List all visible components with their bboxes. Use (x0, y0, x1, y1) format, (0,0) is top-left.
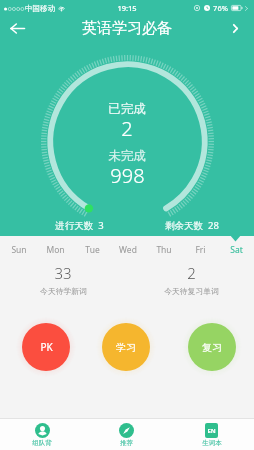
staticText: 学习 (116, 341, 136, 354)
staticText: Thu (156, 244, 172, 256)
button[interactable]: Sun (0, 241, 37, 259)
staticText: 998 (110, 162, 145, 189)
staticText: Mon (46, 244, 65, 256)
staticText: Tue (85, 244, 100, 256)
button[interactable]: Thu (146, 241, 182, 259)
staticText: 2 (187, 263, 196, 283)
button[interactable]: Tue (74, 241, 110, 259)
staticText: PK (40, 340, 53, 354)
button[interactable]: 复习 (188, 323, 236, 371)
button[interactable]: PK (22, 323, 70, 371)
staticText: 进行天数 3 (55, 219, 104, 232)
button[interactable]: EN (169, 419, 254, 450)
button[interactable]: 组队背 (0, 419, 84, 450)
staticText: Sun (11, 244, 27, 256)
staticText: 剩余天数 28 (165, 219, 219, 232)
staticText: 33 (54, 263, 72, 283)
button[interactable]: More (224, 17, 246, 39)
staticText: Wed (119, 244, 137, 256)
button[interactable]: 学习 (102, 323, 150, 371)
staticText: 中国移动 (25, 4, 55, 13)
staticText: 76% (213, 3, 228, 13)
staticText: Sat (230, 244, 243, 256)
staticText: 19:15 (117, 3, 137, 13)
staticText: 英语学习必备 (82, 19, 172, 38)
staticText: Fri (195, 244, 206, 256)
staticText: 未完成 (108, 148, 146, 164)
staticText: 生词本 (202, 439, 222, 447)
button[interactable]: Fri (182, 241, 218, 259)
button[interactable]: Back (4, 16, 30, 40)
button[interactable]: 推荐 (84, 419, 169, 450)
button[interactable]: Mon (37, 241, 74, 259)
staticText: EN (207, 427, 216, 435)
staticText: 今天待复习单词 (164, 286, 219, 296)
staticText: 已完成 (108, 101, 146, 117)
staticText: 2 (121, 115, 133, 142)
button[interactable]: Sat (218, 241, 254, 259)
staticText: 今天待学新词 (40, 286, 87, 296)
staticText: 复习 (202, 341, 222, 354)
staticText: 推荐 (120, 439, 133, 447)
staticText: 组队背 (32, 439, 52, 447)
button[interactable]: Wed (110, 241, 146, 259)
